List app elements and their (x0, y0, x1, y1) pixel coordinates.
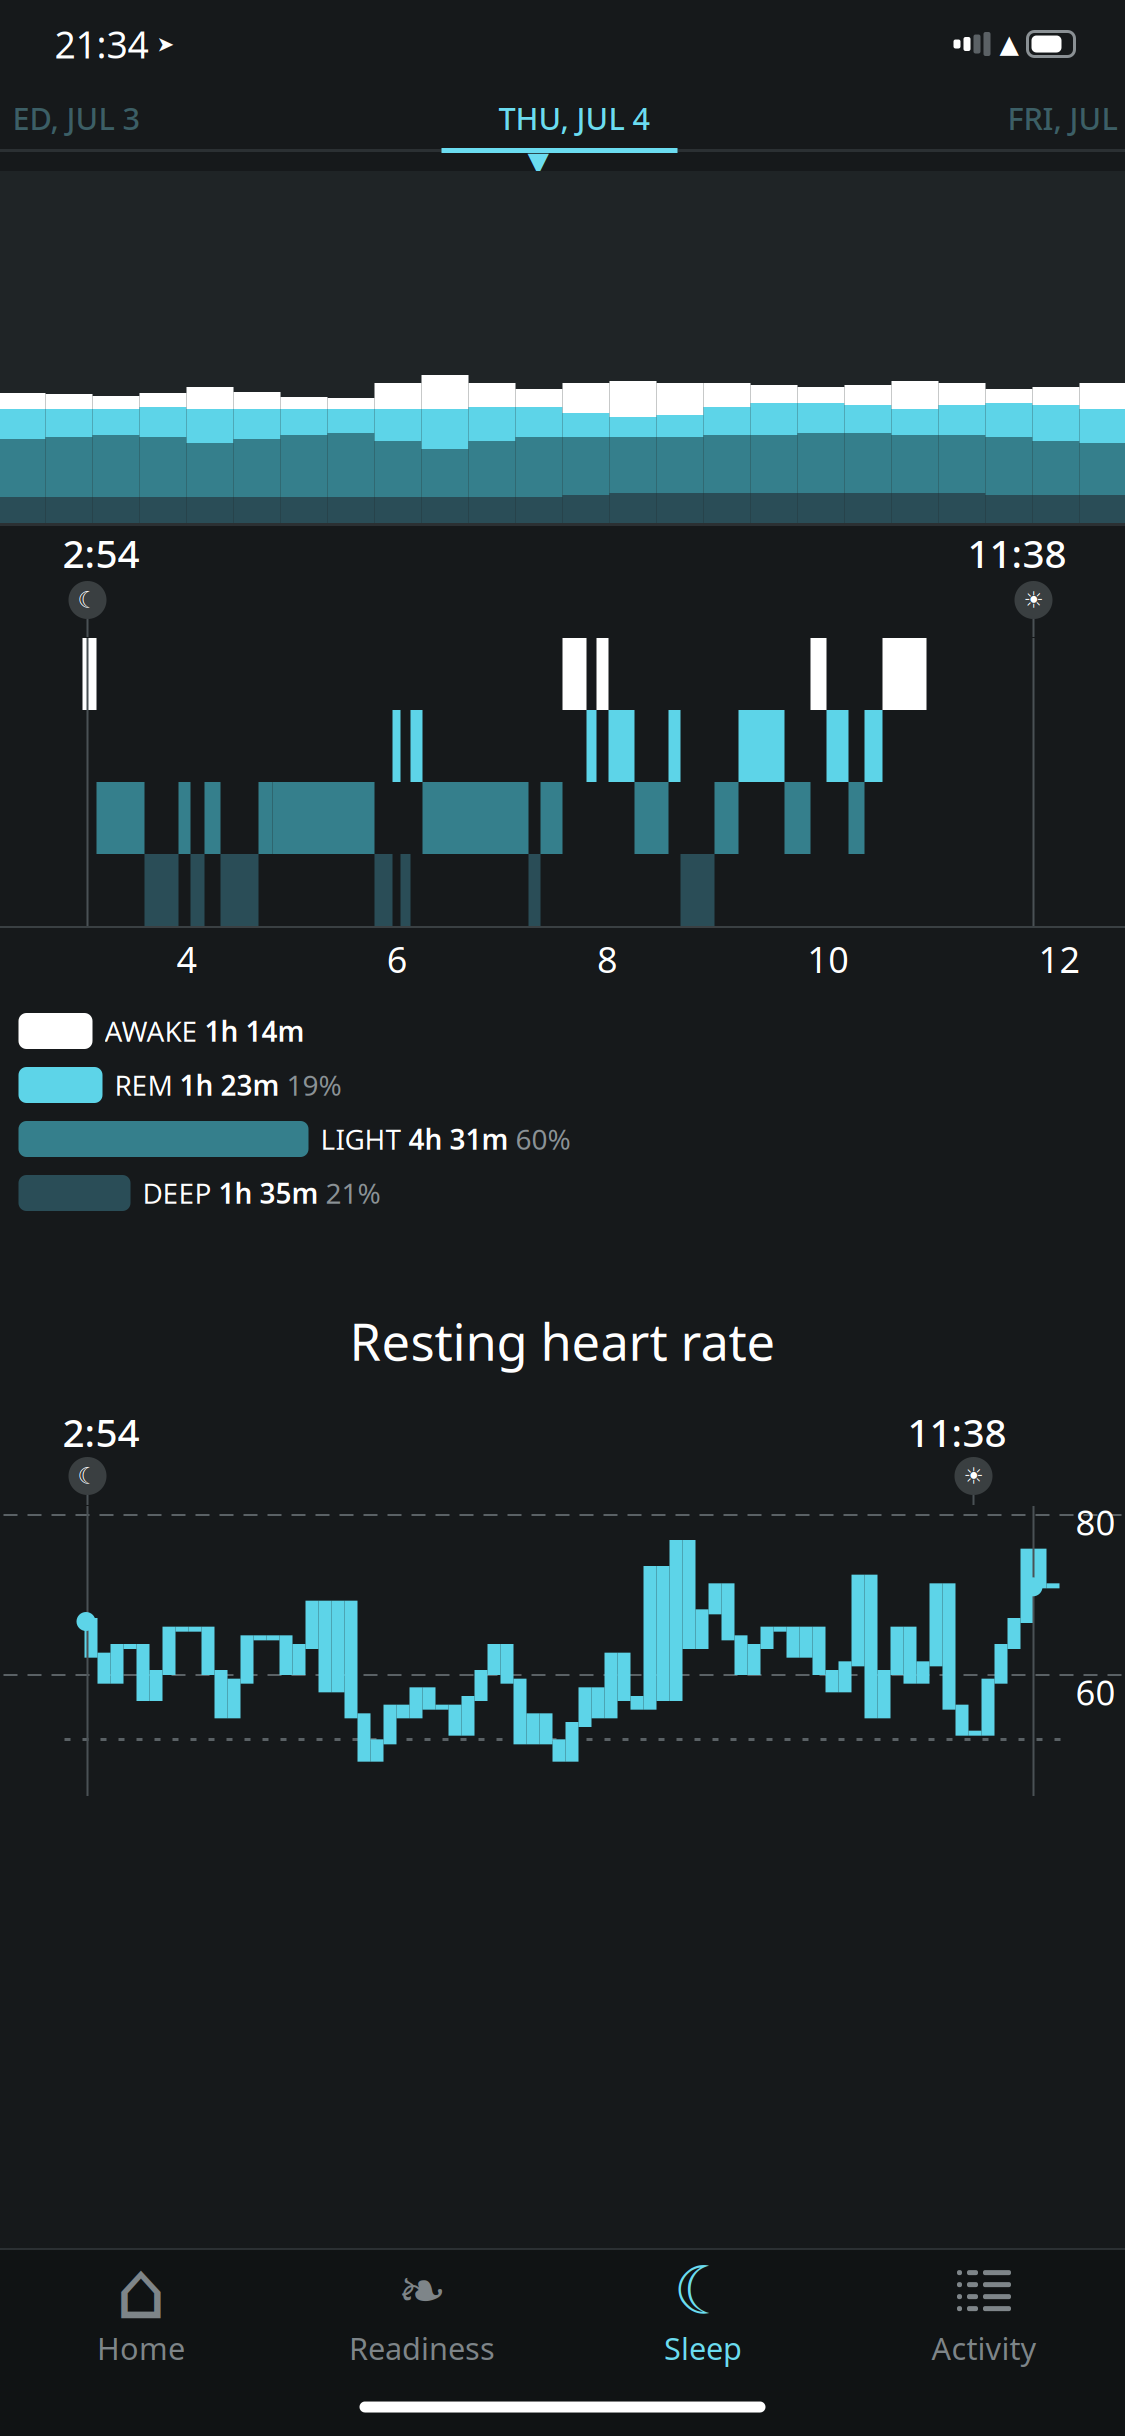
staticText: 12 (1038, 935, 1080, 983)
staticText: ED, JUL 3 (12, 98, 140, 138)
staticText: THU, JUL 4 (498, 98, 650, 138)
staticText: 1h 35m (218, 1174, 318, 1212)
staticText: ⌂ (115, 2245, 166, 2336)
staticText: 6 (387, 935, 408, 983)
staticText: DEEP (142, 1174, 211, 1212)
staticText: 21% (325, 1174, 380, 1212)
staticText: 21:34 (54, 19, 148, 69)
button[interactable]: Activity (843, 2250, 1124, 2378)
staticText: Activity (931, 2328, 1036, 2368)
staticText: Home (97, 2328, 185, 2368)
staticText: Resting heart rate (349, 1307, 775, 1375)
staticText: 4h 31m (408, 1120, 508, 1158)
staticText: Sleep (664, 2328, 742, 2368)
staticText: AWAKE (104, 1012, 197, 1050)
button[interactable]: LIGHT (0, 1112, 1125, 1166)
button[interactable]: AWAKE (0, 1004, 1125, 1058)
staticText: 11:38 (967, 527, 1066, 579)
staticText: ☾ (77, 587, 97, 613)
staticText: 80 (1075, 1499, 1115, 1545)
staticText: FRI, JUL (1007, 98, 1117, 138)
staticText: ☾ (77, 1463, 97, 1489)
staticText: ☀ (963, 1463, 983, 1489)
staticText: Readiness (349, 2328, 495, 2368)
staticText: 2:54 (62, 527, 139, 579)
staticText: ☾ (673, 2253, 733, 2328)
button[interactable]: ⌂ (0, 2250, 281, 2378)
staticText: ❧ (397, 2257, 446, 2324)
button[interactable]: ❧ (281, 2250, 562, 2378)
staticText: 19% (286, 1066, 341, 1104)
button[interactable]: FRI, JUL (972, 88, 1125, 148)
button[interactable]: REM (0, 1058, 1125, 1112)
button[interactable]: THU, JUL 4 (454, 88, 694, 148)
staticText: LIGHT (320, 1120, 401, 1158)
staticText: REM (114, 1066, 172, 1104)
staticText: 8 (597, 935, 618, 983)
staticText: 4 (176, 935, 197, 983)
staticText: 60 (1075, 1669, 1115, 1715)
staticText: ☀ (1023, 587, 1043, 613)
button[interactable]: DEEP (0, 1166, 1125, 1220)
button[interactable]: ☾ (562, 2250, 843, 2378)
staticText: 1h 23m (179, 1066, 279, 1104)
button[interactable]: ED, JUL 3 (0, 88, 176, 148)
staticText: 1h 14m (204, 1012, 304, 1050)
staticText: ▲ (999, 30, 1018, 58)
staticText: ▼ (527, 146, 549, 178)
staticText: ➤ (156, 32, 174, 56)
staticText: 10 (807, 935, 849, 983)
staticText: 2:54 (62, 1406, 139, 1458)
staticText: 60% (515, 1120, 570, 1158)
staticText: 11:38 (907, 1406, 1006, 1458)
